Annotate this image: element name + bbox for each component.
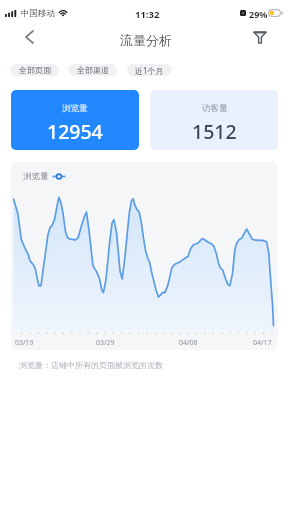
staticText: 03/19 — [15, 338, 34, 348]
button[interactable]: 筛选 — [245, 22, 275, 52]
staticText: 浏览量 — [23, 171, 49, 182]
button[interactable]: 全部页面 — [10, 64, 59, 76]
staticText: 浏览量 — [62, 103, 88, 114]
staticText: 03/29 — [96, 338, 115, 348]
button[interactable]: 近1个月 — [127, 64, 172, 76]
staticText: 全部渠道 — [77, 65, 109, 75]
staticText: 29% — [249, 8, 268, 20]
staticText: 近1个月 — [135, 65, 164, 76]
button[interactable]: 全部渠道 — [68, 64, 117, 76]
button[interactable]: 浏览量 — [11, 90, 139, 150]
staticText: 流量分析 — [120, 32, 172, 48]
staticText: 中国移动 — [21, 8, 55, 19]
staticText: 1512 — [192, 118, 237, 145]
staticText: 04/17 — [253, 338, 272, 348]
button[interactable]: 访客量 — [150, 90, 278, 150]
staticText: 访客量 — [202, 103, 228, 114]
staticText: 浏览量：店铺中所有的页面被浏览的次数 — [19, 360, 163, 370]
staticText: 11:32 — [135, 8, 160, 21]
button[interactable]: 返回 — [14, 22, 44, 52]
staticText: 全部页面 — [19, 65, 51, 75]
staticText: 12954 — [47, 118, 103, 145]
staticText: 04/08 — [179, 338, 198, 348]
